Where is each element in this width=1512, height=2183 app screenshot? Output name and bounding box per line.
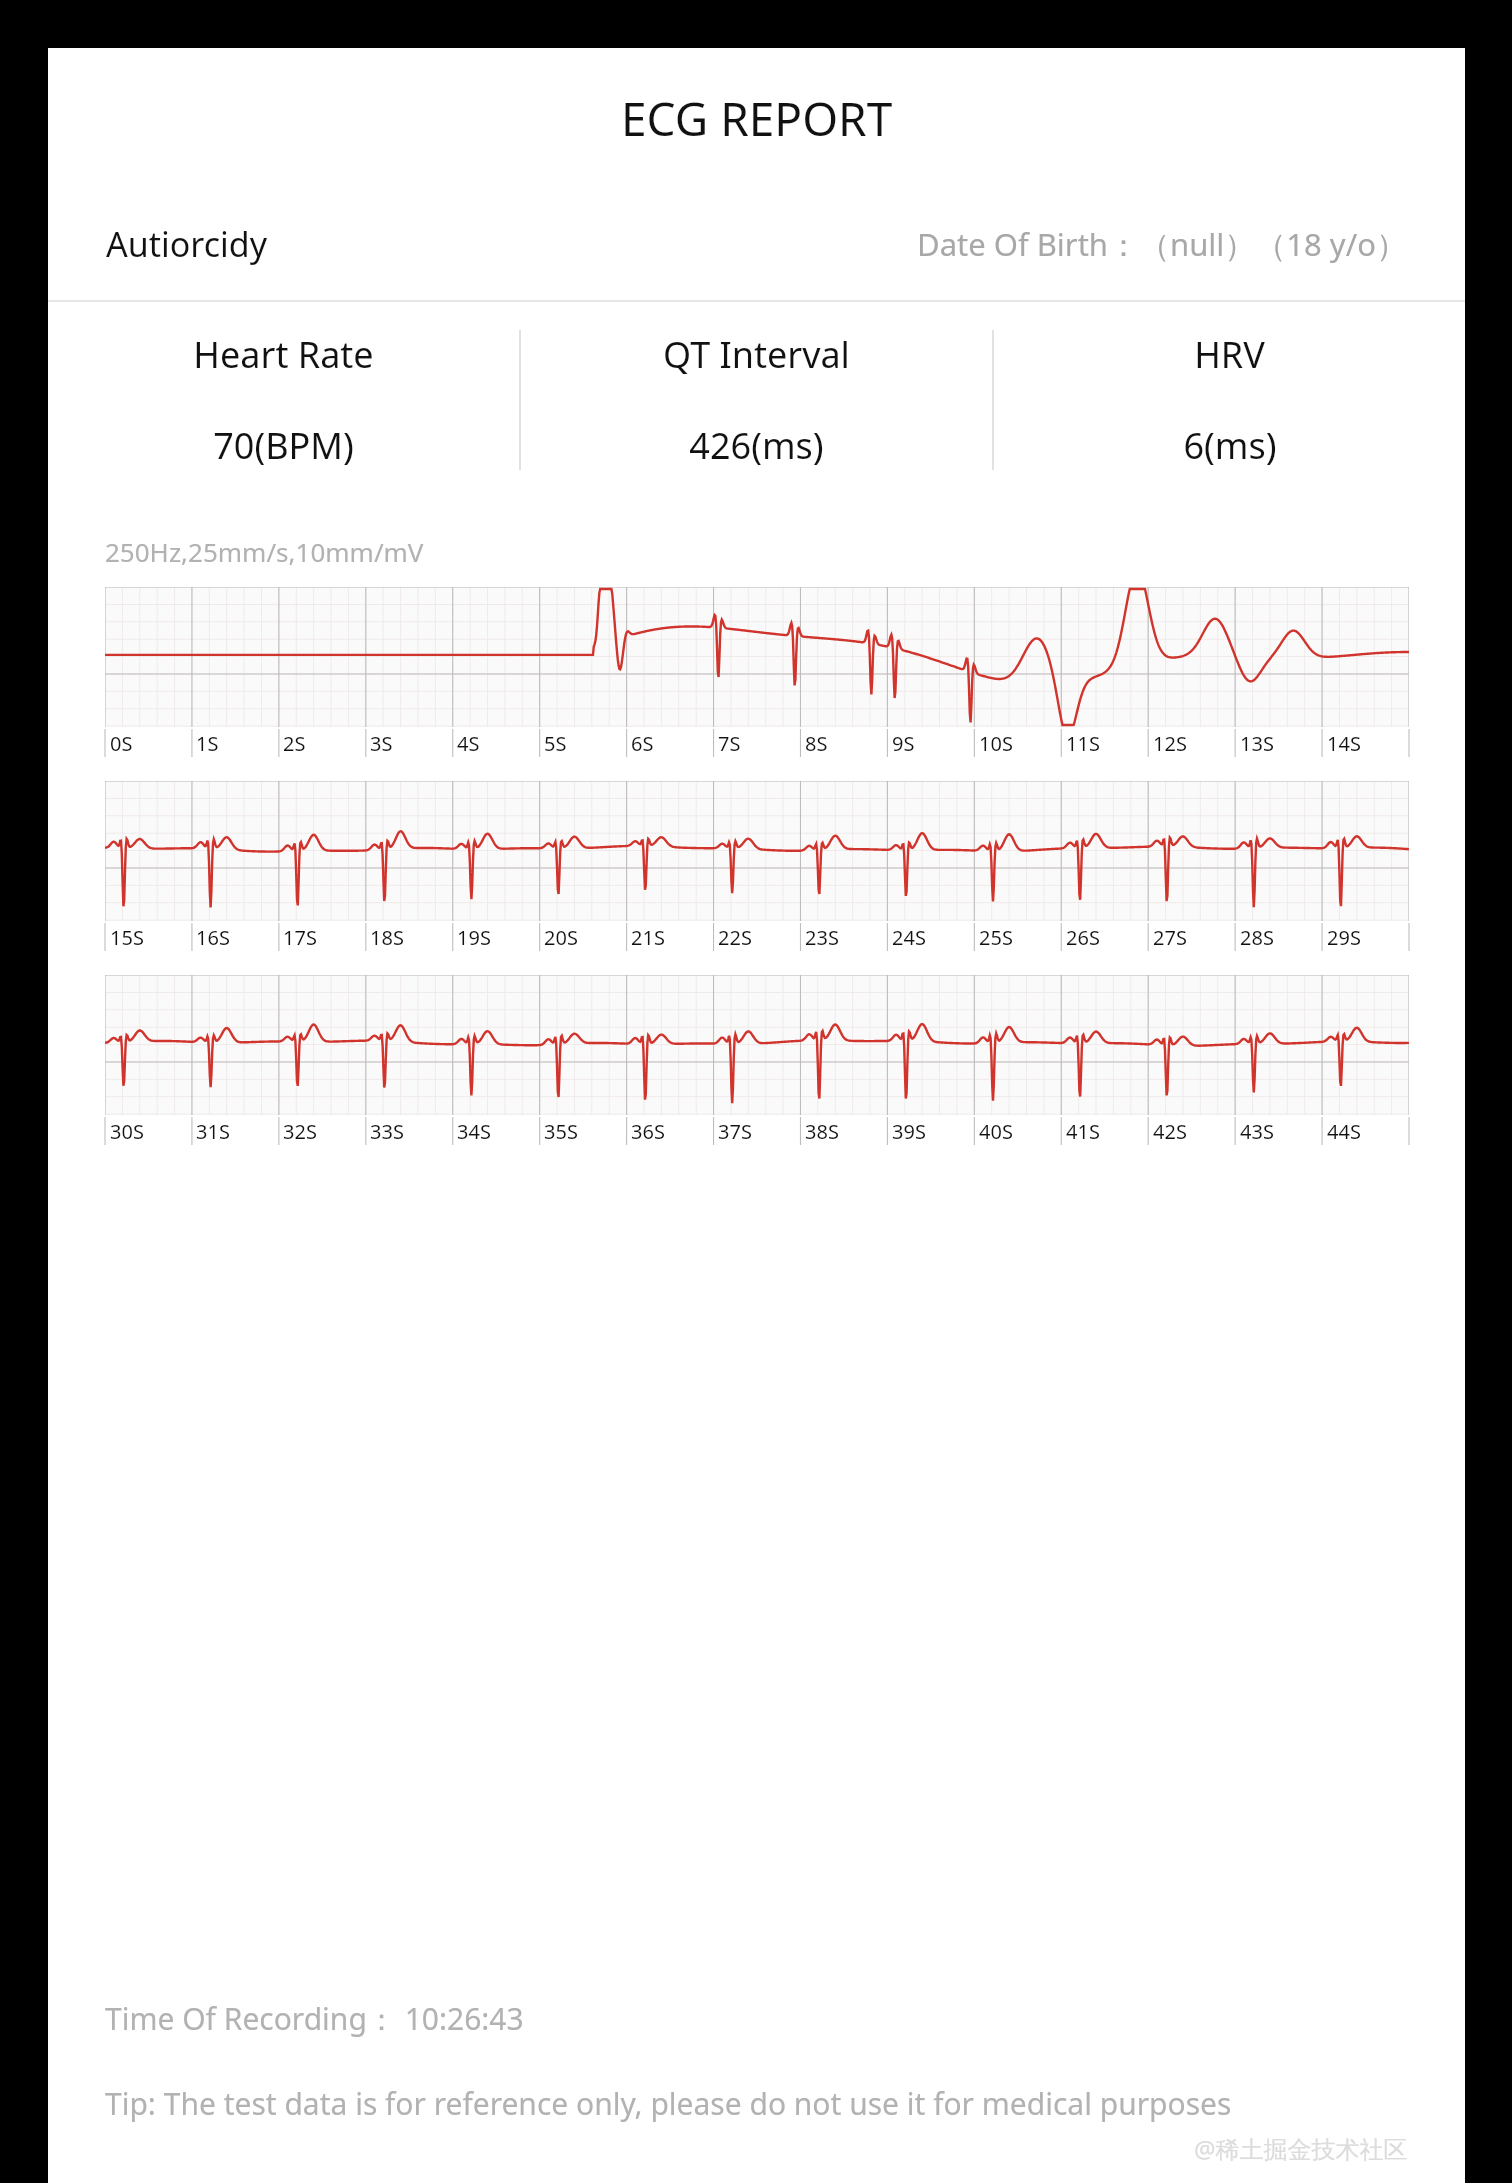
staticText: Date Of Birth：（null）（18 y/o）	[917, 223, 1407, 265]
staticText: 2S	[283, 730, 306, 757]
staticText: 13S	[1240, 730, 1274, 757]
staticText: Time Of Recording： 10:26:43	[105, 1998, 524, 2039]
button[interactable]: HRV	[994, 302, 1465, 498]
staticText: 4S	[457, 730, 480, 757]
staticText: Heart Rate	[193, 330, 374, 379]
staticText: 43S	[1240, 1118, 1274, 1145]
staticText: 22S	[718, 924, 752, 951]
staticText: 7S	[718, 730, 741, 757]
staticText: 19S	[457, 924, 491, 951]
staticText: 1S	[196, 730, 219, 757]
staticText: 15S	[110, 924, 144, 951]
staticText: 12S	[1153, 730, 1187, 757]
staticText: 21S	[631, 924, 665, 951]
staticText: 31S	[196, 1118, 230, 1145]
staticText: 8S	[805, 730, 828, 757]
staticText: 34S	[457, 1118, 491, 1145]
staticText: 14S	[1327, 730, 1361, 757]
staticText: 42S	[1153, 1118, 1187, 1145]
staticText: 9S	[892, 730, 915, 757]
staticText: 36S	[631, 1118, 665, 1145]
staticText: 29S	[1327, 924, 1361, 951]
staticText: HRV	[1194, 330, 1265, 379]
staticText: 25S	[979, 924, 1013, 951]
staticText: ECG REPORT	[621, 87, 893, 150]
staticText: 3S	[370, 730, 393, 757]
staticText: @稀土掘金技术社区	[1194, 2132, 1408, 2165]
staticText: 35S	[544, 1118, 578, 1145]
staticText: 17S	[283, 924, 317, 951]
staticText: 16S	[196, 924, 230, 951]
staticText: 23S	[805, 924, 839, 951]
staticText: 250Hz,25mm/s,10mm/mV	[105, 534, 424, 569]
button[interactable]: Heart Rate	[48, 302, 519, 498]
staticText: 20S	[544, 924, 578, 951]
staticText: 40S	[979, 1118, 1013, 1145]
staticText: Tip: The test data is for reference only…	[105, 2083, 1232, 2124]
staticText: 426(ms)	[689, 421, 824, 470]
staticText: 18S	[370, 924, 404, 951]
staticText: QT Interval	[663, 330, 850, 379]
staticText: 33S	[370, 1118, 404, 1145]
staticText: 0S	[110, 730, 133, 757]
staticText: 24S	[892, 924, 926, 951]
staticText: 32S	[283, 1118, 317, 1145]
staticText: 28S	[1240, 924, 1274, 951]
button[interactable]: Autiorcidy	[48, 188, 1465, 300]
staticText: 5S	[544, 730, 567, 757]
staticText: 41S	[1066, 1118, 1100, 1145]
button[interactable]: QT Interval	[521, 302, 992, 498]
staticText: 11S	[1066, 730, 1100, 757]
staticText: 10S	[979, 730, 1013, 757]
staticText: 38S	[805, 1118, 839, 1145]
staticText: 30S	[110, 1118, 144, 1145]
staticText: 6S	[631, 730, 654, 757]
staticText: 26S	[1066, 924, 1100, 951]
staticText: 70(BPM)	[213, 421, 354, 470]
staticText: 27S	[1153, 924, 1187, 951]
staticText: 44S	[1327, 1118, 1361, 1145]
staticText: 6(ms)	[1183, 421, 1277, 470]
staticText: 37S	[718, 1118, 752, 1145]
staticText: 39S	[892, 1118, 926, 1145]
staticText: Autiorcidy	[106, 221, 268, 267]
